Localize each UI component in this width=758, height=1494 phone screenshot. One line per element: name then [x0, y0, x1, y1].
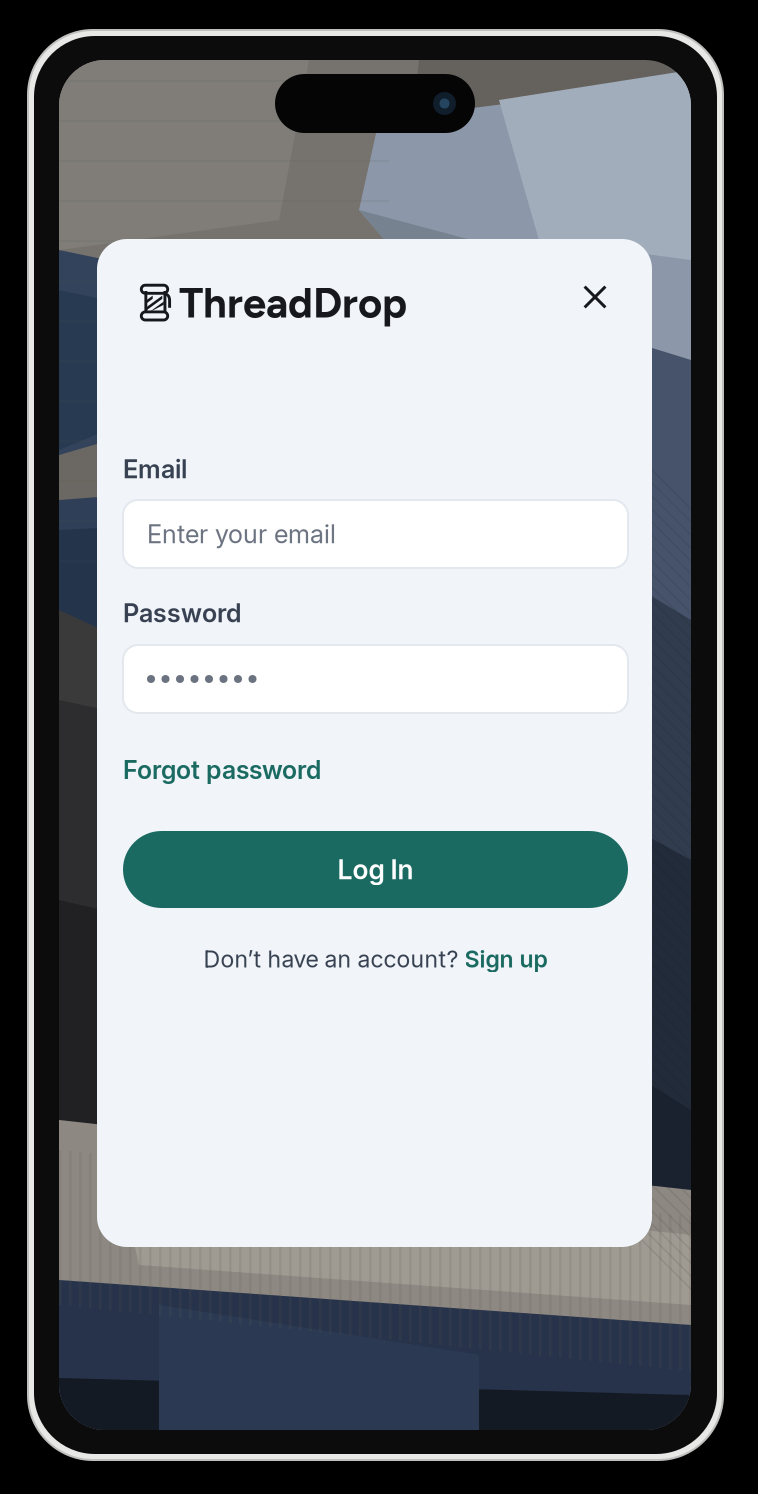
button[interactable]: Log In: [123, 831, 628, 908]
staticText: Sign up: [464, 945, 547, 973]
staticText: Password: [123, 598, 242, 628]
button[interactable]: Enter your email: [123, 500, 628, 568]
button[interactable]: [123, 645, 628, 713]
staticText: Enter your email: [147, 519, 336, 549]
staticText: Email: [123, 454, 187, 484]
staticText: ThreadDrop: [179, 278, 407, 328]
staticText: Don’t have an account?: [203, 945, 464, 973]
staticText: Forgot password: [123, 755, 321, 785]
button[interactable]: Close: [573, 281, 617, 325]
staticText: Log In: [337, 853, 413, 886]
button[interactable]: Forgot password: [123, 755, 333, 785]
button[interactable]: Sign up: [464, 945, 547, 973]
